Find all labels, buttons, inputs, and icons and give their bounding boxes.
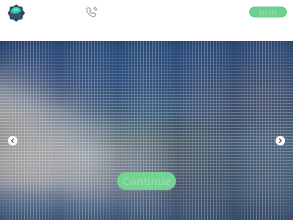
button[interactable]: Previous — [8, 136, 17, 145]
button[interactable]: Continue — [117, 172, 176, 190]
button[interactable]: Join — [249, 6, 287, 17]
button[interactable]: Call — [85, 6, 97, 18]
staticText: Continue — [122, 174, 170, 188]
button[interactable]: Home — [7, 3, 25, 21]
button[interactable]: Next — [276, 136, 285, 145]
staticText: Join — [259, 6, 277, 18]
